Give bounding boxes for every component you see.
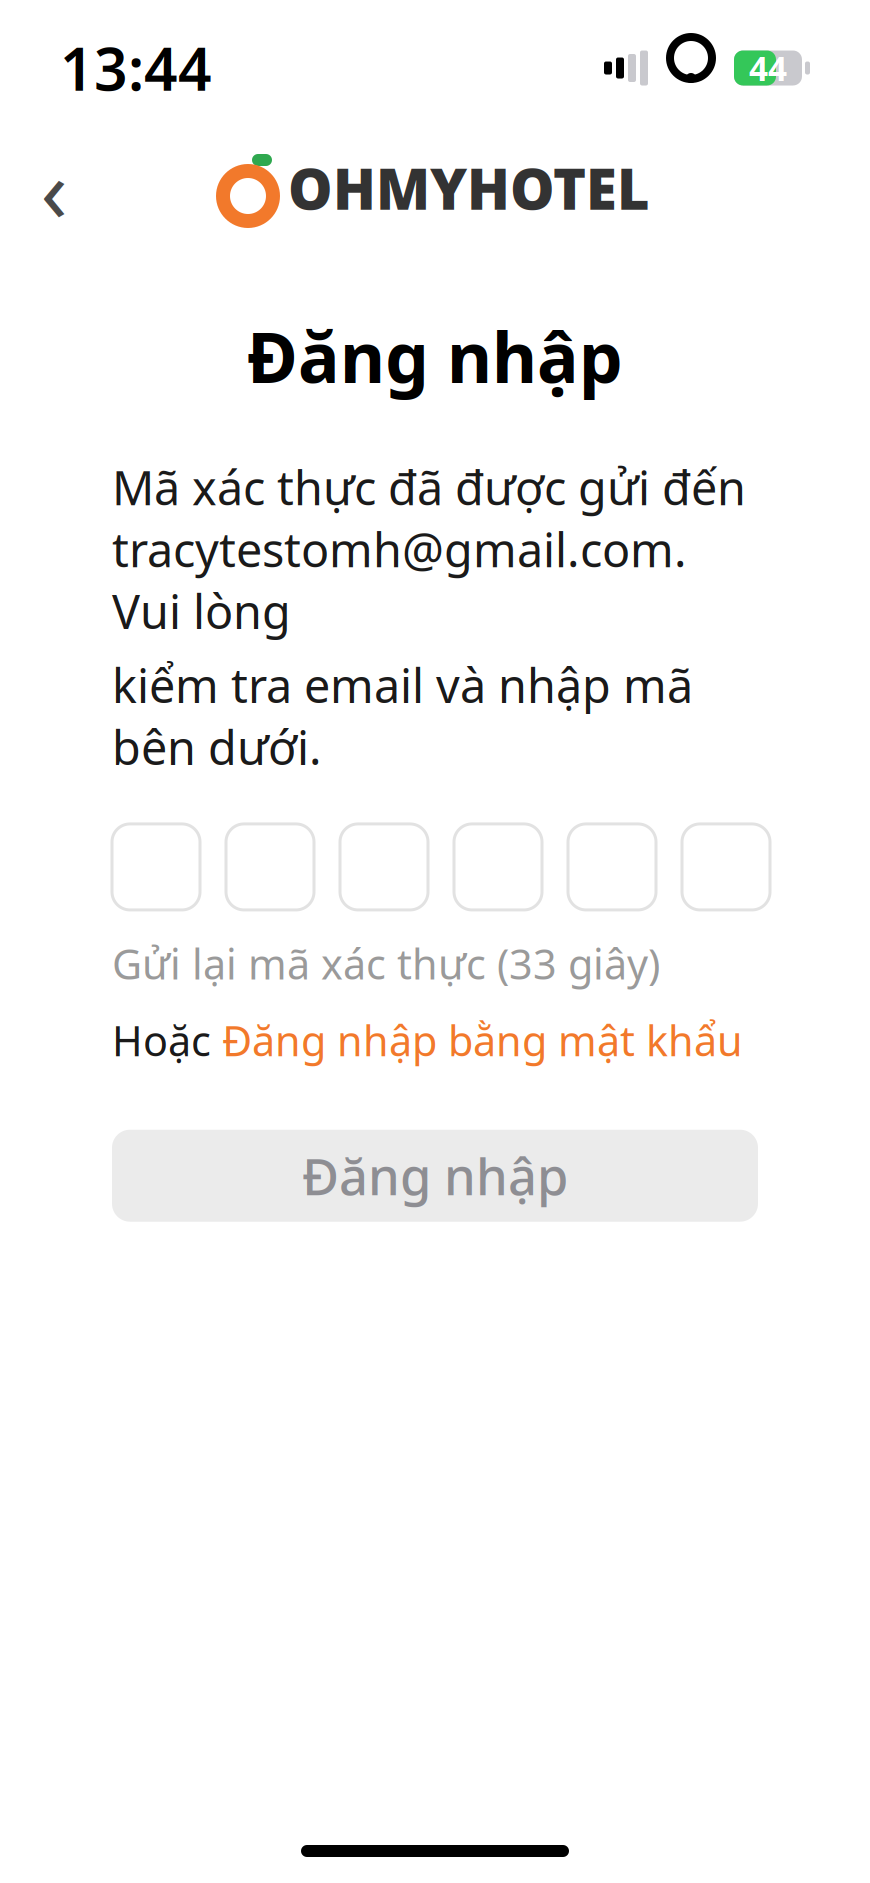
button[interactable]: Quay lại [14, 148, 94, 228]
staticText: OHMYHOTEL [288, 151, 650, 225]
staticText: kiểm tra email và nhập mã bên dưới. [112, 654, 693, 778]
button[interactable]: Đăng nhập [112, 1130, 758, 1222]
staticText: ‹ [40, 130, 67, 246]
staticText: 13:44 [60, 29, 212, 107]
button[interactable]: Đăng nhập bằng mật khẩu [222, 1013, 743, 1068]
staticText: Mã xác thực đã được gửi đến tracytestomh… [112, 456, 746, 642]
staticText: Đăng nhập [247, 310, 623, 402]
staticText: Đăng nhập bằng mật khẩu [222, 1013, 743, 1068]
staticText: 44 [749, 46, 787, 90]
staticText: Gửi lại mã xác thực (33 giây) [112, 936, 660, 991]
button[interactable]: Gửi lại mã xác thực (33 giây) [112, 936, 660, 991]
staticText: Đăng nhập [302, 1142, 568, 1209]
staticText: Hoặc [112, 1013, 222, 1068]
